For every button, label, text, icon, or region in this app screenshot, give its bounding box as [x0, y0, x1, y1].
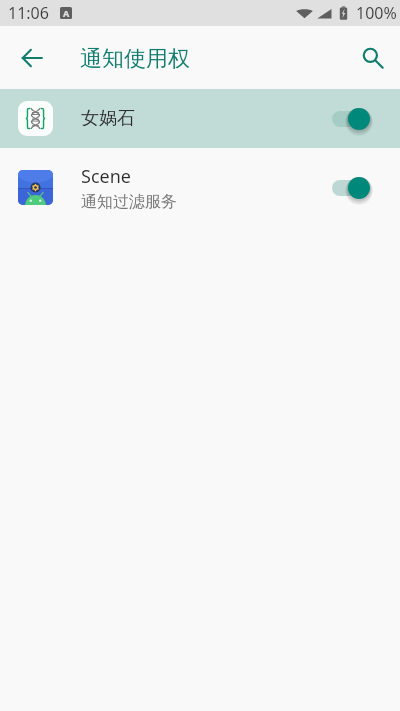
button[interactable]: Toggle	[326, 170, 376, 206]
staticText: 通知过滤服务	[81, 192, 177, 212]
button[interactable]: Search	[345, 26, 400, 89]
button[interactable]: Scene	[0, 148, 400, 227]
staticText: 11:06	[8, 2, 49, 24]
button[interactable]: Back	[0, 26, 63, 89]
staticText: Scene	[81, 164, 131, 189]
button[interactable]: 女娲石	[0, 89, 400, 148]
staticText: A	[63, 7, 70, 19]
staticText: 100%	[356, 2, 397, 24]
button[interactable]: Toggle	[326, 101, 376, 137]
staticText: 女娲石	[81, 107, 135, 130]
staticText: 通知使用权	[80, 45, 190, 73]
